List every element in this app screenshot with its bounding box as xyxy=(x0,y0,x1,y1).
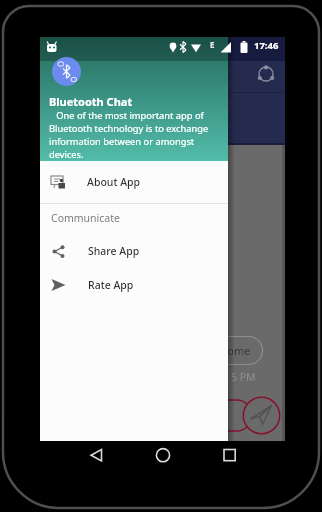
staticText: Welcome xyxy=(203,343,251,358)
staticText: 17:46 xyxy=(254,39,279,52)
button[interactable]: Share App xyxy=(40,236,228,266)
staticText: Communicate xyxy=(51,211,120,225)
staticText: Share App xyxy=(88,244,140,258)
staticText: Bluetooth technology is to exchange xyxy=(49,122,209,135)
staticText: Rate App xyxy=(88,278,134,292)
button[interactable] xyxy=(256,64,276,84)
staticText: information between or amongst xyxy=(49,135,195,148)
staticText: devices. xyxy=(49,148,84,161)
button[interactable]: About App xyxy=(40,167,228,196)
staticText: 5 PM xyxy=(231,370,256,384)
staticText: About App xyxy=(87,175,141,189)
button[interactable]: Rate App xyxy=(40,270,228,300)
staticText: One of the most important app of xyxy=(49,109,204,122)
staticText: E xyxy=(210,39,215,50)
staticText: Bluetooth Chat xyxy=(49,94,133,109)
